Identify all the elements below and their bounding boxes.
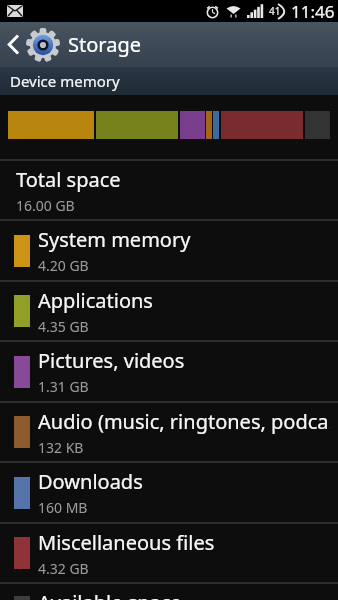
button[interactable]: Storage (0, 22, 151, 67)
staticText: 132 KB (38, 438, 84, 457)
staticText: 4.35 GB (38, 317, 89, 336)
staticText: 4.32 GB (38, 559, 89, 578)
staticText: Audio (music, ringtones, podca.. (38, 408, 330, 435)
staticText: Applications (38, 287, 153, 314)
button[interactable]: Applications (0, 282, 338, 340)
staticText: Available space (38, 589, 182, 600)
button[interactable]: Audio (music, ringtones, podca.. (0, 403, 338, 461)
staticText: 41 (269, 4, 281, 18)
button[interactable]: System memory (0, 221, 338, 280)
staticText: Downloads (38, 468, 143, 495)
staticText: 4.20 GB (38, 256, 89, 275)
button[interactable]: Downloads (0, 463, 338, 522)
button[interactable]: Available space (0, 584, 338, 600)
staticText: 16.00 GB (16, 196, 75, 215)
staticText: Total space (16, 166, 121, 193)
staticText: Miscellaneous files (38, 529, 215, 556)
staticText: 160 MB (38, 498, 88, 517)
staticText: Storage (68, 31, 141, 58)
button[interactable]: Pictures, videos (0, 342, 338, 401)
staticText: System memory (38, 226, 191, 253)
staticText: Device memory (10, 71, 120, 91)
button[interactable]: Miscellaneous files (0, 524, 338, 582)
staticText: Pictures, videos (38, 347, 185, 374)
staticText: 1.31 GB (38, 377, 89, 396)
staticText: 11:46 (291, 0, 335, 22)
button[interactable]: Total space (0, 161, 338, 219)
